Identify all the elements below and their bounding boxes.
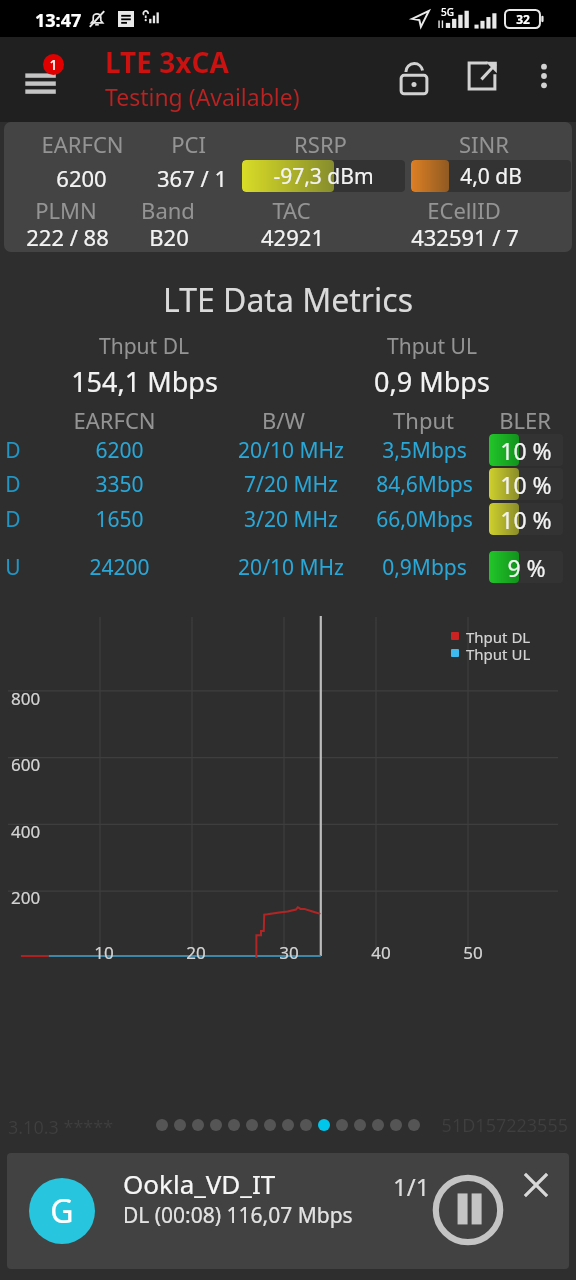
staticText: 10 %: [500, 504, 552, 535]
button[interactable]: [336, 1119, 348, 1131]
staticText: 3350: [95, 470, 144, 499]
staticText: 20/10 MHz: [238, 553, 344, 582]
staticText: 3,5Mbps: [382, 436, 467, 465]
staticText: 84,6Mbps: [376, 470, 473, 499]
button[interactable]: [264, 1119, 276, 1131]
staticText: B20: [149, 222, 189, 252]
staticText: -97,3 dBm: [273, 162, 374, 191]
staticText: 7/20 MHz: [244, 470, 338, 499]
staticText: 51D157223555: [441, 1113, 568, 1138]
button[interactable]: More options: [518, 50, 570, 102]
staticText: 10: [94, 941, 114, 964]
staticText: 432591 / 7: [411, 222, 519, 252]
button[interactable]: [156, 1119, 168, 1131]
staticText: 10 %: [500, 435, 552, 466]
staticText: 32: [516, 11, 530, 27]
staticText: 20/10 MHz: [238, 436, 344, 465]
staticText: 400: [11, 820, 41, 843]
staticText: BLER: [499, 405, 551, 435]
staticText: D: [5, 470, 21, 499]
staticText: 800: [11, 687, 41, 710]
staticText: EARFCN: [41, 129, 124, 159]
button[interactable]: [282, 1119, 294, 1131]
staticText: 42921: [261, 222, 324, 252]
staticText: Testing (Available): [105, 81, 300, 112]
staticText: U: [5, 553, 21, 582]
button[interactable]: [390, 1119, 402, 1131]
staticText: D: [5, 505, 21, 534]
staticText: LTE 3xCA: [105, 43, 229, 81]
staticText: TAC: [272, 195, 311, 225]
button[interactable]: [318, 1119, 330, 1131]
staticText: PLMN: [35, 195, 97, 225]
staticText: Thput UL: [387, 332, 477, 361]
button[interactable]: D: [0, 468, 576, 500]
button[interactable]: [192, 1119, 204, 1131]
button[interactable]: [300, 1119, 312, 1131]
staticText: 13:47: [35, 8, 82, 33]
staticText: 600: [11, 753, 41, 776]
staticText: 24200: [89, 553, 150, 582]
button[interactable]: [408, 1119, 420, 1131]
staticText: B/W: [262, 405, 305, 435]
staticText: 20: [186, 941, 206, 964]
staticText: LTE Data Metrics: [0, 278, 576, 322]
staticText: 200: [11, 886, 41, 909]
staticText: 3.10.3 *****: [8, 1115, 114, 1140]
staticText: 40: [371, 941, 391, 964]
staticText: Ookla_VD_IT: [123, 1166, 276, 1201]
staticText: 6200: [95, 436, 144, 465]
staticText: 4,0 dB: [460, 162, 522, 191]
button[interactable]: [372, 1119, 384, 1131]
staticText: Thput: [393, 405, 454, 435]
staticText: DL (00:08) 116,07 Mbps: [123, 1201, 353, 1230]
staticText: 50: [463, 941, 483, 964]
button[interactable]: Close: [513, 1162, 559, 1208]
staticText: RSRP: [294, 129, 347, 159]
button[interactable]: D: [0, 434, 576, 466]
staticText: 10 %: [500, 469, 552, 500]
staticText: 5G: [441, 5, 454, 19]
staticText: PCI: [171, 129, 206, 159]
staticText: Thput DL: [99, 332, 189, 361]
staticText: 1/1: [393, 1170, 430, 1203]
button[interactable]: Pause: [429, 1171, 507, 1249]
button[interactable]: Open in new window: [454, 48, 510, 104]
staticText: 1: [49, 55, 58, 74]
staticText: Thput DL: [466, 627, 531, 647]
staticText: Band: [141, 195, 195, 225]
staticText: 66,0Mbps: [376, 505, 473, 534]
staticText: 6200: [56, 163, 107, 193]
staticText: ECellID: [427, 195, 501, 225]
staticText: Thput UL: [466, 644, 531, 664]
staticText: EARFCN: [73, 405, 156, 435]
staticText: 154,1 Mbps: [71, 363, 218, 400]
button[interactable]: [228, 1119, 240, 1131]
button[interactable]: [354, 1119, 366, 1131]
staticText: 3/20 MHz: [244, 505, 338, 534]
staticText: 222 / 88: [26, 222, 109, 252]
staticText: 1650: [95, 505, 144, 534]
staticText: D: [5, 436, 21, 465]
button[interactable]: [210, 1119, 222, 1131]
staticText: 0,9 Mbps: [374, 363, 490, 400]
button[interactable]: D: [0, 503, 576, 535]
staticText: G: [50, 1189, 74, 1233]
staticText: 0,9Mbps: [382, 553, 467, 582]
button[interactable]: [246, 1119, 258, 1131]
staticText: 9 %: [507, 552, 546, 583]
staticText: 30: [279, 941, 299, 964]
button[interactable]: U: [0, 551, 576, 583]
button[interactable]: G: [29, 1178, 95, 1244]
button[interactable]: [174, 1119, 186, 1131]
staticText: 367 / 1: [157, 163, 227, 193]
button[interactable]: Navigation menu: [12, 44, 70, 102]
button[interactable]: Unlock: [386, 49, 442, 105]
staticText: SINR: [459, 129, 509, 159]
